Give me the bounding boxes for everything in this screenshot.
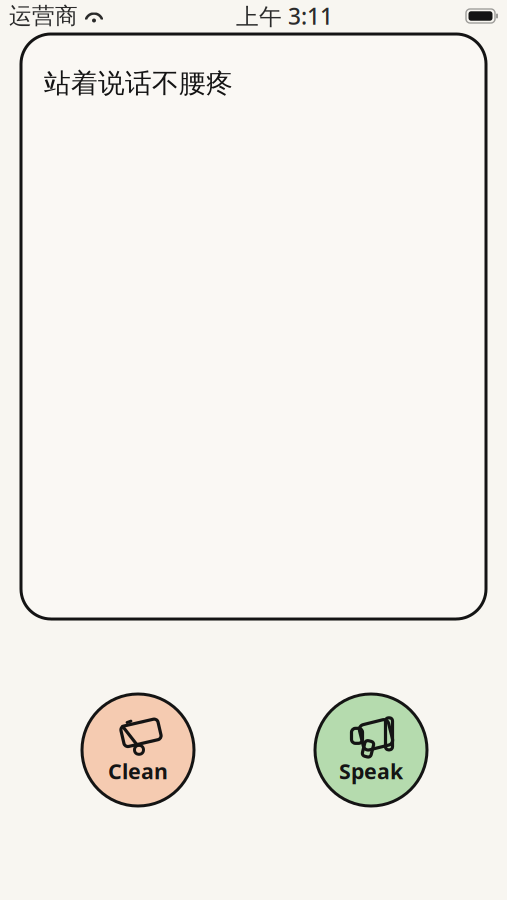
staticText: 上午 3:11 (236, 1, 333, 31)
staticText: 运营商 (9, 2, 78, 30)
staticText: 站着说话不腰疼 (44, 67, 233, 100)
staticText: Speak (339, 757, 403, 785)
button[interactable]: Speak (315, 694, 427, 806)
button[interactable]: Clean (82, 694, 194, 806)
staticText: Clean (108, 757, 168, 785)
